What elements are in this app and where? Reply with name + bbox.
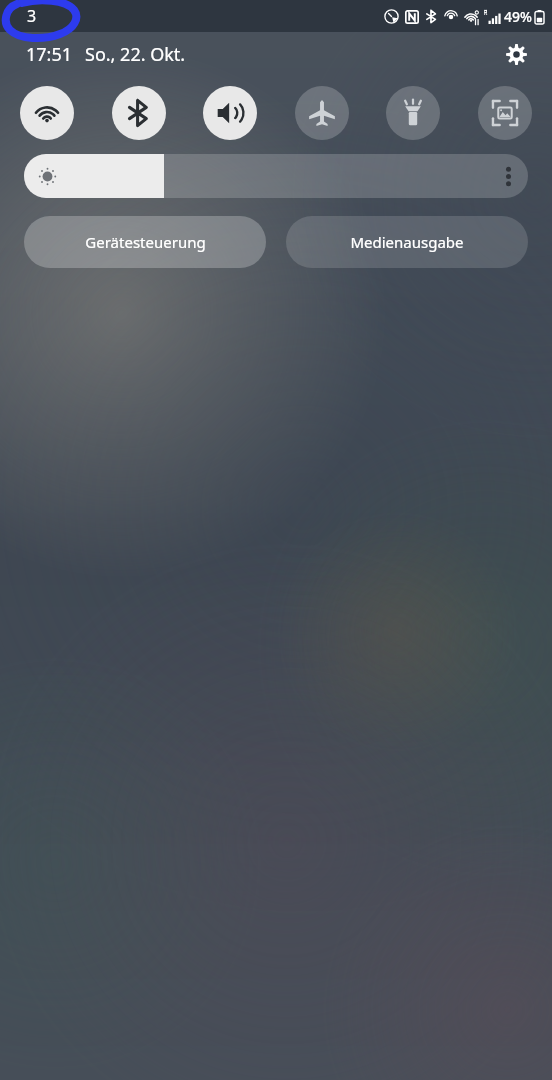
button[interactable]: Ton [203, 86, 257, 140]
button[interactable]: Gerätesteuerung [24, 216, 266, 268]
button[interactable]: Screenshot [478, 86, 532, 140]
staticText: 3 [27, 5, 37, 27]
button[interactable]: Medienausgabe [286, 216, 528, 268]
button[interactable]: Helligkeit [24, 154, 528, 198]
staticText: Gerätesteuerung [85, 232, 206, 252]
button[interactable]: Einstellungen [498, 36, 534, 72]
staticText: 17:51 [26, 42, 73, 67]
button[interactable]: Flugmodus [295, 86, 349, 140]
button[interactable]: WLAN [20, 86, 74, 140]
staticText: Medienausgabe [350, 232, 464, 252]
staticText: 49% [504, 7, 532, 26]
button[interactable]: Taschenlampe [386, 86, 440, 140]
button[interactable]: Bluetooth [112, 86, 166, 140]
staticText: So., 22. Okt. [85, 42, 186, 67]
